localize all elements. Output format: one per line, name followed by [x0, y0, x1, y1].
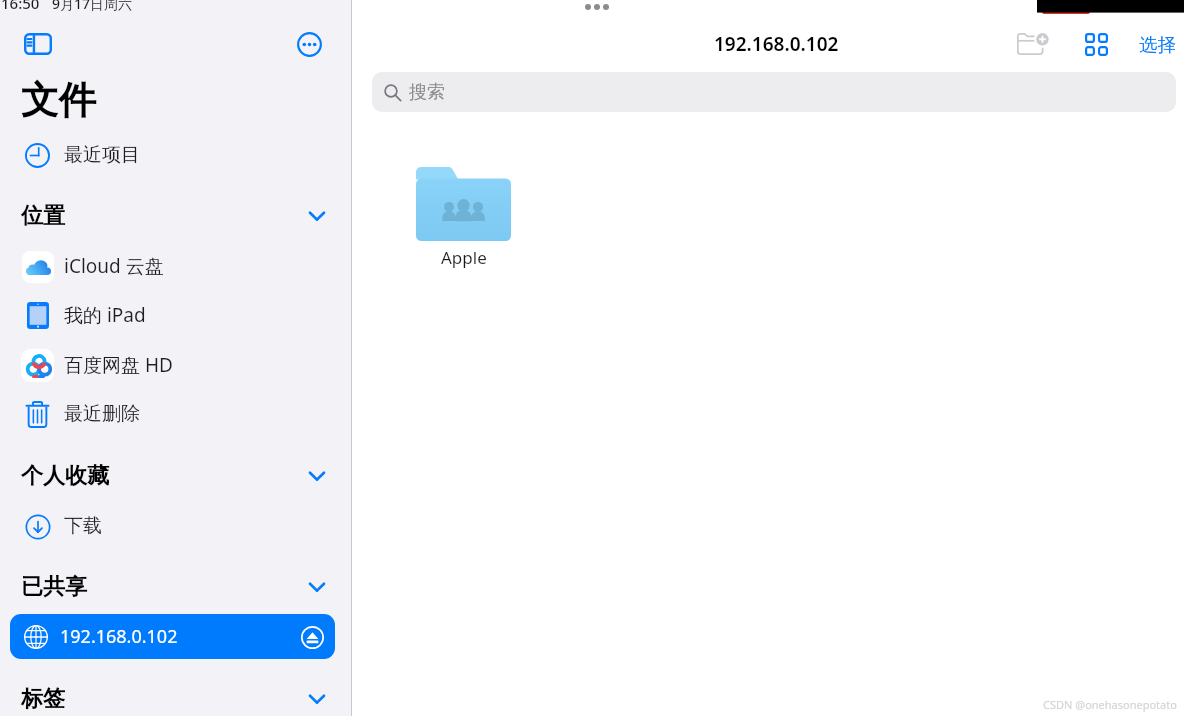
button[interactable]: 最近删除: [21, 390, 351, 438]
staticText: 最近删除: [64, 402, 140, 426]
button[interactable]: iCloud 云盘: [21, 242, 351, 290]
staticText: 文件: [21, 77, 96, 124]
button[interactable]: Collapse 位置: [303, 202, 331, 230]
staticText: CSDN @onehasonepotato: [1043, 697, 1177, 712]
button[interactable]: 我的 iPad: [21, 291, 351, 339]
button[interactable]: Eject: [298, 623, 326, 651]
button[interactable]: 192.168.0.102: [21, 614, 326, 659]
staticText: 标签: [21, 685, 65, 713]
staticText: 位置: [21, 202, 65, 230]
staticText: Apple: [441, 246, 487, 268]
button[interactable]: 搜索: [383, 72, 1176, 112]
staticText: 已共享: [21, 573, 87, 601]
staticText: 选择: [1139, 33, 1176, 56]
staticText: 最近项目: [64, 143, 140, 167]
button[interactable]: Apple: [416, 167, 511, 268]
staticText: 我的 iPad: [64, 302, 146, 328]
staticText: 192.168.0.102: [60, 624, 178, 649]
staticText: 下载: [64, 514, 102, 538]
button[interactable]: Grid view: [1081, 29, 1112, 60]
button[interactable]: Collapse 个人收藏: [303, 462, 331, 490]
staticText: 192.168.0.102: [714, 31, 839, 57]
staticText: 16:50: [1, 0, 40, 13]
staticText: 百度网盘 HD: [64, 352, 173, 378]
staticText: 搜索: [409, 81, 445, 104]
button[interactable]: New folder: [1013, 28, 1053, 60]
button[interactable]: 下载: [21, 502, 351, 550]
button[interactable]: 选择: [1133, 30, 1181, 59]
button[interactable]: 标签: [0, 680, 351, 716]
button[interactable]: 已共享: [0, 568, 351, 606]
button[interactable]: Toggle sidebar: [15, 27, 60, 60]
staticText: 个人收藏: [21, 462, 109, 490]
button[interactable]: 位置: [0, 197, 351, 235]
button[interactable]: More options: [294, 29, 324, 59]
button[interactable]: 百度网盘 HD: [21, 341, 351, 389]
button[interactable]: Collapse 标签: [303, 685, 331, 713]
button[interactable]: Collapse 已共享: [303, 573, 331, 601]
button[interactable]: 最近项目: [21, 131, 351, 179]
staticText: 9月17日周六: [52, 0, 133, 13]
button[interactable]: 个人收藏: [0, 457, 351, 495]
staticText: iCloud 云盘: [64, 253, 164, 279]
